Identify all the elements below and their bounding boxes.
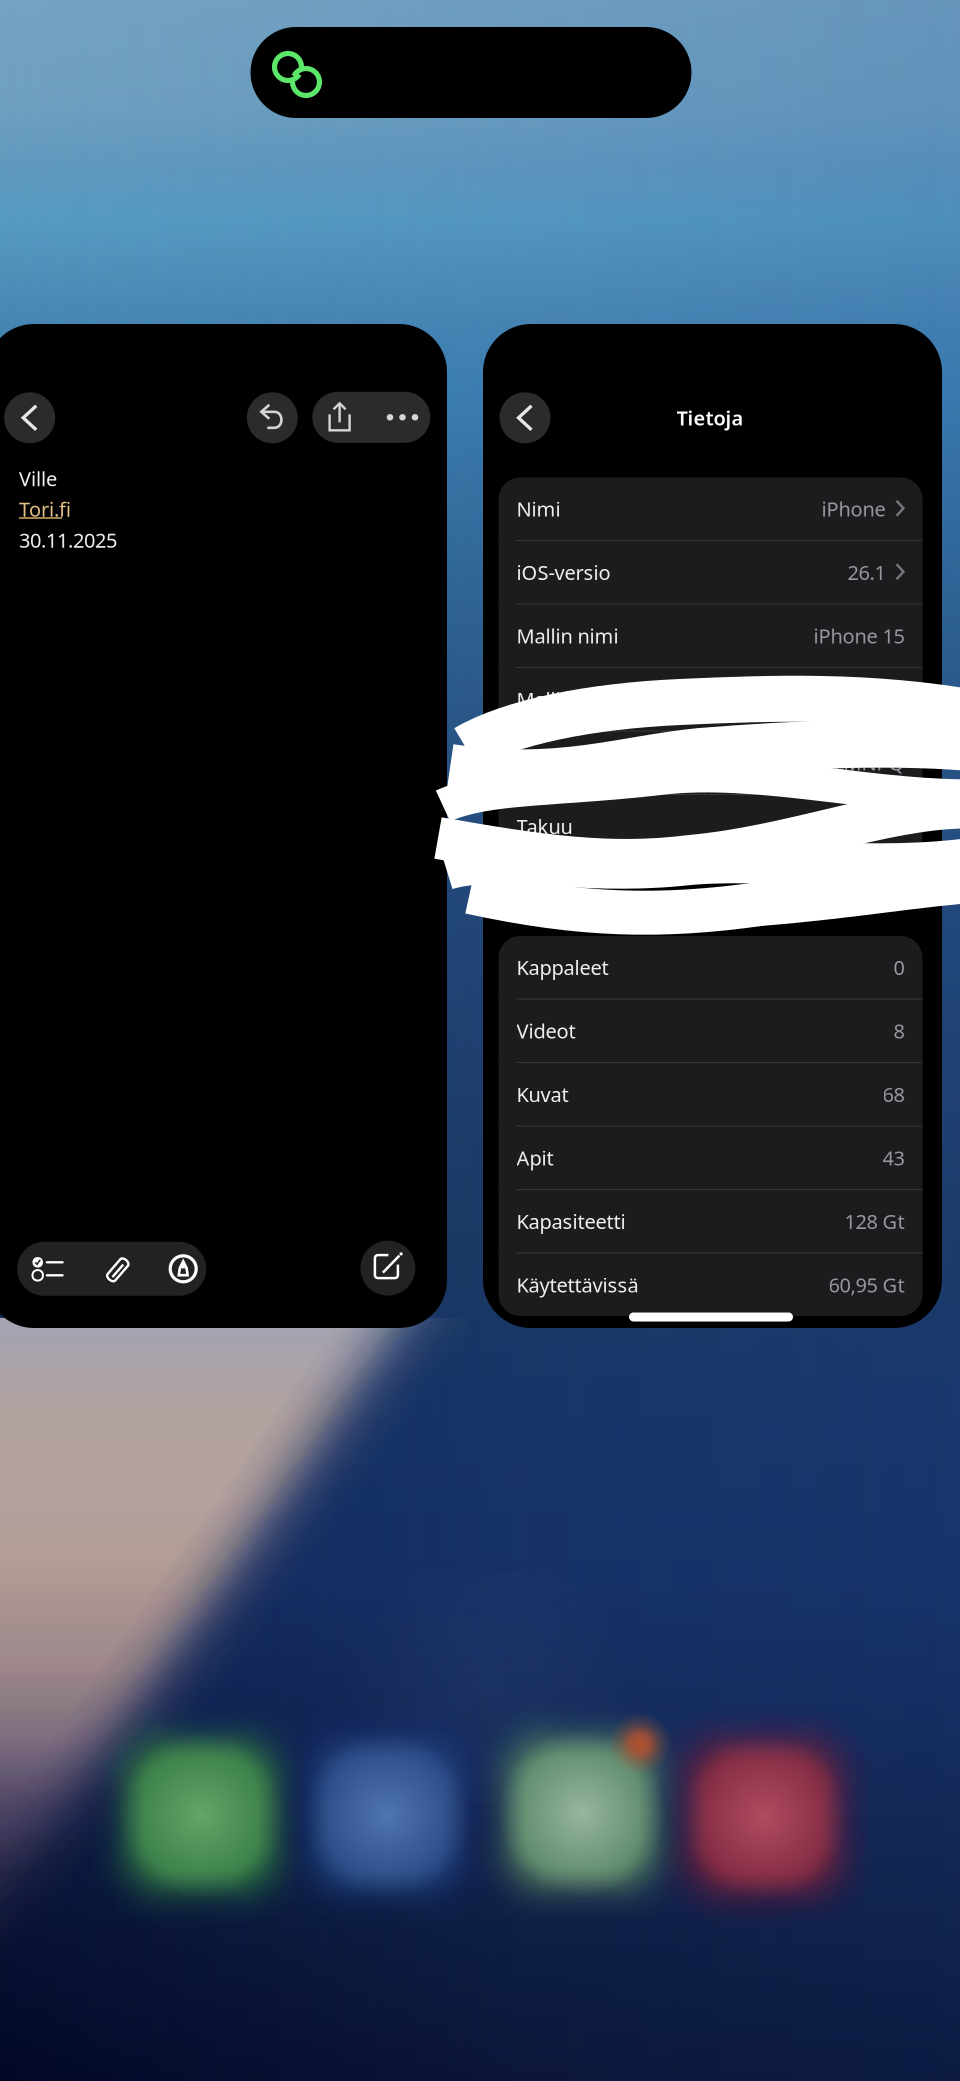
staticText: 60,95 Gt — [828, 1271, 904, 1298]
staticText: VX7K2LMNPQ — [775, 749, 904, 776]
staticText: 30.11.2025 — [19, 527, 117, 553]
button[interactable]: Share — [310, 392, 369, 443]
staticText: Kappaleet — [516, 954, 608, 981]
staticText: Mallin nimi — [516, 622, 618, 649]
staticText: 68 — [882, 1081, 904, 1108]
button[interactable]: Tori.fi — [19, 497, 219, 521]
button[interactable]: Mallin nimi — [498, 604, 922, 667]
button[interactable]: Kappaleet — [498, 936, 922, 998]
button[interactable]: iOS-versio — [498, 541, 922, 603]
button[interactable]: New note — [360, 1241, 415, 1296]
staticText: Ville — [19, 465, 57, 492]
staticText: Apit — [516, 1144, 553, 1171]
button[interactable]: Attach — [87, 1242, 147, 1296]
staticText: iPhone 15 — [813, 622, 904, 649]
button[interactable]: Back — [499, 392, 550, 443]
button[interactable]: Mallinumero — [498, 668, 922, 730]
staticText: Videot — [516, 1017, 575, 1044]
staticText: Tietoja — [676, 404, 743, 431]
button[interactable]: Checklist — [18, 1242, 78, 1296]
staticText: Takuu — [516, 813, 572, 840]
button[interactable]: Nimi — [498, 477, 922, 540]
staticText: 43 — [882, 1144, 904, 1171]
button[interactable]: Back — [4, 392, 55, 443]
button[interactable]: More — [373, 392, 432, 443]
staticText: Mallinumero — [516, 686, 634, 713]
staticText: Kuvat — [516, 1081, 568, 1108]
staticText: Kapasiteetti — [516, 1208, 625, 1235]
staticText: 26.1 — [847, 559, 885, 586]
staticText: Nimi — [516, 495, 560, 522]
button[interactable]: Kuvat — [498, 1063, 922, 1125]
staticText: Vanhentunut — [784, 813, 904, 840]
button[interactable]: Sarjanumero — [498, 731, 922, 794]
staticText: Tori.fi — [19, 496, 71, 522]
staticText: iPhone — [821, 495, 885, 522]
button[interactable]: Kapasiteetti — [498, 1190, 922, 1252]
staticText: 0 — [893, 954, 904, 981]
staticText: 128 Gt — [844, 1208, 904, 1235]
button[interactable]: Undo — [247, 392, 298, 443]
staticText: Käytettävissä — [516, 1271, 638, 1298]
button[interactable]: Markup — [153, 1242, 213, 1296]
staticText: iOS-versio — [516, 559, 610, 586]
staticText: 8 — [893, 1017, 904, 1044]
button[interactable]: Takuu — [498, 795, 922, 857]
button[interactable]: Käytettävissä — [498, 1253, 922, 1316]
button[interactable]: Apit — [498, 1126, 922, 1189]
button[interactable]: Videot — [498, 999, 922, 1062]
